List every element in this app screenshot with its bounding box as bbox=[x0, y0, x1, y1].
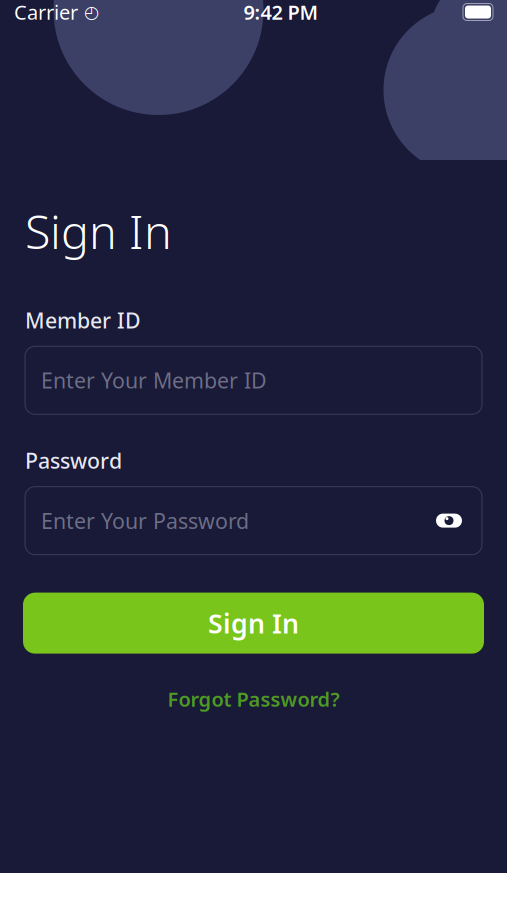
staticText: Password bbox=[25, 446, 122, 475]
staticText: 9:42 PM bbox=[243, 0, 318, 25]
button[interactable]: Show password bbox=[432, 504, 466, 538]
button[interactable]: Sign In bbox=[23, 593, 484, 654]
staticText: Sign In bbox=[25, 200, 172, 262]
staticText: ◴ bbox=[84, 2, 99, 22]
staticText: Sign In bbox=[208, 605, 299, 641]
button[interactable]: Forgot Password? bbox=[155, 680, 351, 718]
staticText: Enter Your Member ID bbox=[41, 366, 267, 394]
staticText: Member ID bbox=[25, 306, 141, 334]
staticText: Forgot Password? bbox=[167, 686, 339, 712]
staticText: Carrier bbox=[14, 0, 78, 25]
staticText: Enter Your Password bbox=[41, 506, 249, 535]
